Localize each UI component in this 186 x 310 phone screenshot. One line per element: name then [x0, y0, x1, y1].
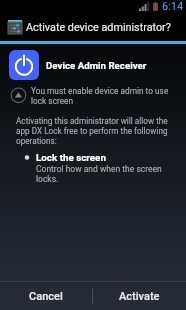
staticText: Activate device administrator? [26, 21, 171, 34]
staticText: Cancel [29, 290, 63, 303]
staticText: Activating this administrator will allow… [16, 116, 174, 146]
staticText: You must enable device admin to use lock… [31, 86, 172, 106]
staticText: Activate [119, 290, 160, 303]
other: Expand details [10, 86, 27, 103]
staticText: Lock the screen [36, 152, 106, 163]
button[interactable]: Activate [93, 282, 186, 310]
staticText: Control how and when the screen locks. [36, 164, 166, 184]
staticText: Device Admin Receiver [46, 60, 147, 71]
button[interactable]: Cancel [0, 282, 92, 310]
staticText: 6:14 [162, 0, 184, 13]
